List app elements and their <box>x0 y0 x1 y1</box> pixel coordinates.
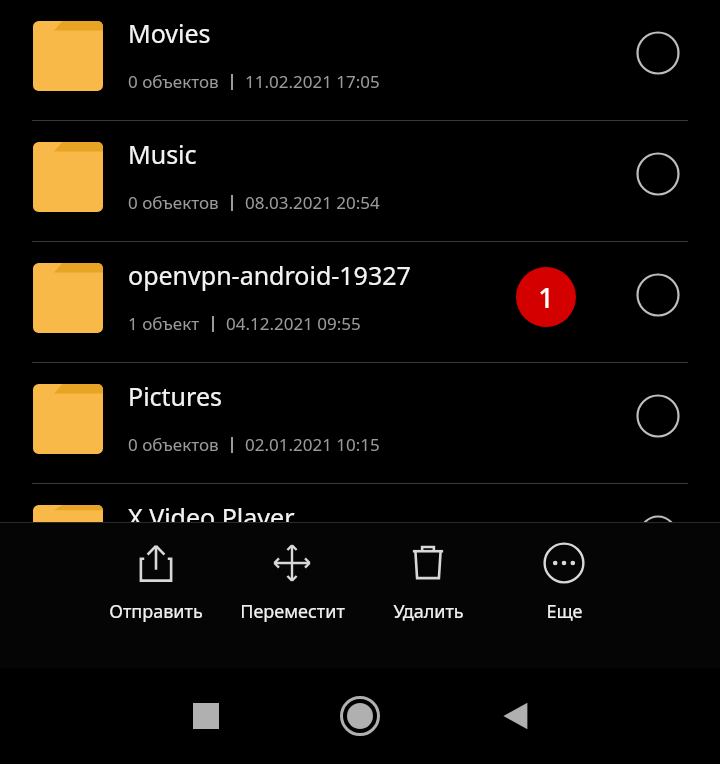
button[interactable]: Select Music <box>636 152 680 196</box>
button[interactable]: Select openvpn-android-19327 <box>636 273 680 317</box>
staticText: 1 <box>538 279 554 316</box>
staticText: Movies <box>128 16 211 50</box>
staticText: 0 объектов <box>128 433 219 456</box>
button[interactable]: Movies <box>0 0 720 120</box>
button[interactable]: X Video Player <box>0 484 720 523</box>
staticText: openvpn-android-19327 <box>128 258 411 292</box>
button[interactable]: More <box>504 523 624 624</box>
button[interactable]: Back <box>488 688 544 744</box>
other: Move <box>271 542 313 584</box>
button[interactable]: Music <box>0 121 720 241</box>
staticText: Удалить <box>393 599 464 624</box>
button[interactable]: Select X Video Player <box>636 515 680 523</box>
staticText: 1 объект <box>128 312 200 335</box>
other: More <box>543 542 585 584</box>
staticText: Pictures <box>128 379 222 413</box>
staticText: Переместит <box>240 599 345 624</box>
button[interactable]: openvpn-android-19327 <box>0 242 720 362</box>
staticText: 11.02.2021 17:05 <box>245 70 380 93</box>
staticText: 04.12.2021 09:55 <box>226 312 361 335</box>
other: Delete <box>407 542 449 584</box>
button[interactable]: Recents <box>178 688 234 744</box>
staticText: 08.03.2021 20:54 <box>245 191 380 214</box>
button[interactable]: Share <box>96 523 216 624</box>
button[interactable]: Pictures <box>0 363 720 483</box>
staticText: Music <box>128 137 197 171</box>
button[interactable]: Select Pictures <box>636 394 680 438</box>
staticText: 0 объектов <box>128 191 219 214</box>
staticText: Еще <box>546 599 583 624</box>
staticText: Отправить <box>109 599 203 624</box>
button[interactable]: Delete <box>368 523 488 624</box>
button[interactable]: Select Movies <box>636 31 680 75</box>
staticText: X Video Player <box>128 500 295 523</box>
staticText: 02.01.2021 10:15 <box>245 433 380 456</box>
other: Share <box>135 542 177 584</box>
button[interactable]: Move <box>232 523 352 624</box>
button[interactable]: Home <box>330 686 390 746</box>
staticText: 0 объектов <box>128 70 219 93</box>
